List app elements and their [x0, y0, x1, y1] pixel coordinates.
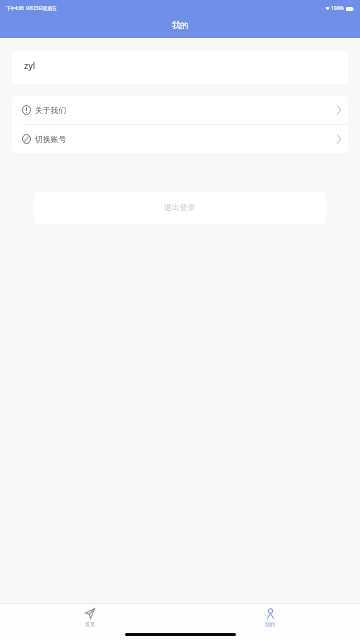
button[interactable]: 退出登录 [34, 192, 326, 224]
other: 我的 [266, 608, 275, 619]
staticText: 我的 [172, 20, 189, 30]
staticText: 下午4:06 9月23日星期五 [6, 5, 57, 11]
staticText: 我的 [265, 621, 275, 627]
button[interactable]: zyl [12, 51, 348, 84]
other: 首页 [85, 608, 95, 619]
button[interactable]: 首页 [62, 604, 118, 627]
staticText: 切换账号 [35, 134, 67, 144]
staticText: 首页 [85, 621, 95, 627]
button[interactable]: 关于我们 [12, 96, 348, 124]
staticText: 退出登录 [164, 202, 196, 212]
staticText: 关于我们 [35, 105, 67, 115]
button[interactable]: 切换账号 [12, 125, 348, 153]
staticText: 100% [331, 5, 344, 12]
staticText: zyl [24, 60, 36, 72]
button[interactable]: 我的 [242, 604, 298, 627]
